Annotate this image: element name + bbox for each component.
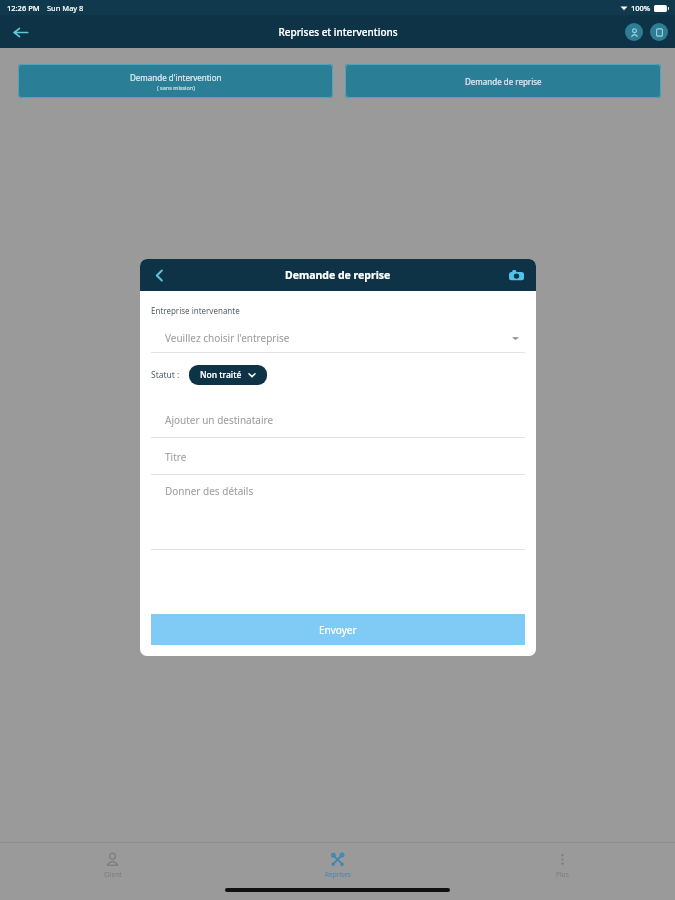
staticText: Entreprise intervenante: [151, 305, 240, 316]
staticText: Reprises: [325, 870, 351, 879]
button[interactable]: Demande de reprise: [345, 64, 661, 98]
button[interactable]: Veuillez choisir l'entreprise: [151, 323, 525, 353]
staticText: ( sans mission): [157, 84, 195, 91]
button[interactable]: Ajouter un destinataire: [151, 401, 525, 438]
staticText: Donner des détails: [165, 484, 254, 498]
staticText: Sun May 8: [47, 3, 84, 13]
button[interactable]: Back: [148, 264, 170, 286]
button[interactable]: Back: [6, 18, 34, 46]
button[interactable]: Non traité: [189, 365, 267, 385]
button[interactable]: Demande d'intervention: [18, 64, 333, 98]
staticText: Reprises et interventions: [278, 25, 398, 39]
button[interactable]: Profile: [625, 23, 643, 41]
staticText: Demande de reprise: [465, 76, 542, 87]
button[interactable]: Titre: [151, 438, 525, 475]
staticText: Statut :: [151, 369, 180, 381]
staticText: Non traité: [200, 369, 242, 381]
staticText: Envoyer: [319, 623, 357, 637]
button[interactable]: Donner des détails: [151, 475, 525, 550]
staticText: Titre: [165, 450, 187, 464]
button[interactable]: Envoyer: [151, 614, 525, 645]
staticText: Plus: [556, 870, 569, 879]
staticText: Client: [104, 870, 122, 879]
staticText: Demande de reprise: [285, 268, 391, 282]
staticText: 100%: [631, 3, 651, 13]
staticText: Demande d'intervention: [130, 72, 222, 83]
button[interactable]: Camera: [505, 264, 527, 286]
button[interactable]: Notes: [650, 23, 668, 41]
staticText: Veuillez choisir l'entreprise: [165, 331, 290, 345]
staticText: Ajouter un destinataire: [165, 413, 274, 427]
staticText: 12:26 PM: [7, 3, 40, 13]
button[interactable]: Reprises: [225, 852, 450, 879]
